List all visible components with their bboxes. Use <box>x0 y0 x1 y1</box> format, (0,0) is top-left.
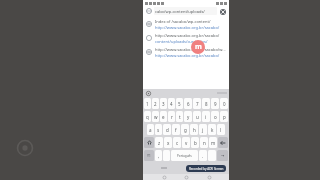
staticText: o <box>214 114 217 120</box>
button[interactable]: 9 <box>211 98 219 109</box>
staticText: e <box>162 114 165 120</box>
staticText: 7 <box>196 101 199 107</box>
button[interactable]: Navigation <box>207 175 211 179</box>
button[interactable]: Navigation <box>162 175 166 179</box>
button[interactable]: Index of /sacabo/wp-content/uploads/curr <box>146 17 226 31</box>
button[interactable]: g <box>181 124 189 135</box>
button[interactable]: w <box>152 111 159 122</box>
button[interactable]: j <box>199 124 207 135</box>
staticText: c <box>176 140 179 146</box>
staticText: k <box>211 127 214 133</box>
button[interactable]: c <box>173 137 181 148</box>
button[interactable]: 7 <box>193 98 201 109</box>
button[interactable]: 1 <box>144 98 151 109</box>
staticText: v <box>185 140 188 146</box>
button[interactable]: x <box>164 137 172 148</box>
button[interactable] <box>208 150 216 161</box>
staticText: j <box>202 127 204 133</box>
staticText: ?!1 <box>147 154 151 158</box>
button[interactable]: q <box>144 111 151 122</box>
staticText: 0 <box>223 101 226 107</box>
button[interactable]: . <box>199 150 207 161</box>
button[interactable]: a <box>147 124 154 135</box>
button[interactable]: ?!1 <box>144 150 154 161</box>
staticText: Português <box>177 154 192 158</box>
staticText: Recorded by ADV Screen <box>189 167 224 171</box>
staticText: x <box>167 140 170 146</box>
button[interactable]: Keyboard settings <box>145 90 151 96</box>
staticText: http://www.sacabo.org.br/sacabo/w... <box>155 47 226 52</box>
button[interactable]: d <box>163 124 171 135</box>
staticText: h <box>193 127 196 133</box>
button[interactable]: Recording indicator <box>191 40 205 54</box>
button[interactable]: 2 <box>152 98 159 109</box>
button[interactable]: Clear <box>219 8 226 15</box>
staticText: cabo/wp-content/uploads/curriculos| <box>155 9 217 14</box>
staticText: 1 <box>146 101 149 107</box>
button[interactable]: http://www.sacabo.org.br/sacabo/wp- <box>146 31 226 45</box>
button[interactable]: n <box>200 137 208 148</box>
staticText: 6 <box>187 101 190 107</box>
staticText: Index of /sacabo/wp-content/uploads/curr <box>155 19 226 24</box>
button[interactable]: Backspace <box>218 137 228 148</box>
staticText: 2 <box>154 101 157 107</box>
staticText: s <box>157 127 160 133</box>
button[interactable]: 4 <box>168 98 175 109</box>
button[interactable]: http://www.sacabo.org.br/sacabo/w... <box>146 45 226 59</box>
staticText: n <box>203 140 206 146</box>
button[interactable] <box>163 150 170 161</box>
staticText: r <box>171 114 173 120</box>
button[interactable]: k <box>208 124 216 135</box>
button[interactable]: l <box>217 124 225 135</box>
button[interactable]: y <box>184 111 192 122</box>
staticText: w <box>154 114 158 120</box>
staticText: m <box>195 42 202 52</box>
button[interactable]: p <box>220 111 228 122</box>
staticText: 9 <box>214 101 217 107</box>
staticText: p <box>223 114 226 120</box>
staticText: http://www.sacabo.org.br/sacabo/wp-conte… <box>155 25 226 30</box>
button[interactable]: b <box>191 137 199 148</box>
staticText: b <box>194 140 197 146</box>
button[interactable]: v <box>182 137 190 148</box>
button[interactable]: 3 <box>160 98 167 109</box>
button[interactable]: r <box>168 111 175 122</box>
staticText: 8 <box>205 101 208 107</box>
button[interactable]: u <box>193 111 201 122</box>
staticText: l <box>220 127 222 133</box>
staticText: u <box>196 114 199 120</box>
button[interactable]: Shift <box>144 137 154 148</box>
button[interactable]: s <box>155 124 162 135</box>
button[interactable]: o <box>211 111 219 122</box>
button[interactable]: 0 <box>220 98 228 109</box>
staticText: http://www.sacabo.org.br/sacabo/wp- <box>155 33 226 38</box>
staticText: m <box>211 140 216 146</box>
button[interactable]: Navigation <box>184 175 188 179</box>
button[interactable]: f <box>172 124 180 135</box>
button[interactable]: , <box>155 150 162 161</box>
staticText: a <box>149 127 152 133</box>
button[interactable]: z <box>155 137 163 148</box>
button[interactable]: h <box>190 124 198 135</box>
staticText: http://www.sacabo.org.br/sacabo/wp-con..… <box>155 53 226 58</box>
staticText: 3 <box>162 101 165 107</box>
staticText: → <box>221 153 225 158</box>
staticText: z <box>158 140 161 146</box>
staticText: 5 <box>178 101 181 107</box>
button[interactable]: cabo/wp-content/uploads/curriculos| <box>146 6 226 16</box>
button[interactable]: 5 <box>176 98 183 109</box>
button[interactable]: i <box>202 111 210 122</box>
staticText: f <box>175 127 177 133</box>
button[interactable]: e <box>160 111 167 122</box>
button[interactable]: 8 <box>202 98 210 109</box>
staticText: content/uploads/curriculos/ <box>155 39 208 44</box>
staticText: y <box>187 114 190 120</box>
button[interactable]: Português <box>171 150 198 161</box>
staticText: g <box>184 127 187 133</box>
button[interactable]: 6 <box>184 98 192 109</box>
button[interactable]: t <box>176 111 183 122</box>
staticText: q <box>146 114 149 120</box>
staticText: . <box>202 153 204 159</box>
button[interactable]: → <box>217 150 228 161</box>
button[interactable]: m <box>209 137 217 148</box>
